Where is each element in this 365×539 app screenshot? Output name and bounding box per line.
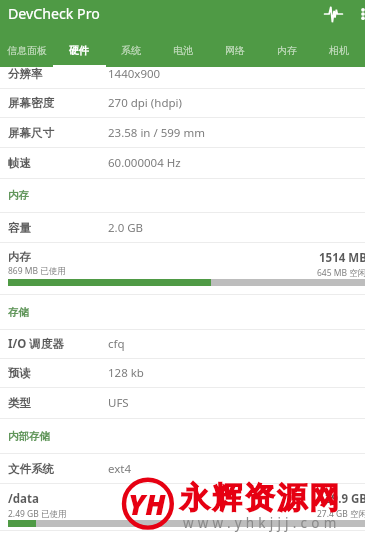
staticText: 29.9 GB [325, 491, 365, 507]
staticText: 60.000004 Hz [108, 155, 181, 171]
staticText: 存储 [8, 306, 29, 319]
button[interactable]: I/O 调度器 [0, 330, 365, 359]
staticText: 1440x900 [108, 67, 161, 82]
button[interactable]: 内存 [0, 243, 365, 295]
staticText: 869 MB 已使用 [8, 265, 66, 277]
staticText: 内存 [8, 250, 31, 264]
staticText: YH [128, 485, 166, 524]
button[interactable]: 网络 [209, 34, 261, 67]
button[interactable]: More options [352, 3, 365, 25]
staticText: UFS [108, 395, 129, 411]
staticText: 2.49 GB 已使用 [8, 508, 67, 520]
button[interactable]: 容量 [0, 213, 365, 243]
staticText: 永辉资源网 [179, 479, 340, 517]
button[interactable]: 预读 [0, 359, 365, 388]
button[interactable]: /data [0, 484, 365, 531]
staticText: 网络 [225, 44, 245, 57]
staticText: 270 dpi (hdpi) [108, 95, 182, 111]
staticText: 系统 [121, 44, 141, 57]
staticText: 分辨率 [8, 67, 108, 81]
staticText: 内部存储 [8, 430, 50, 443]
staticText: 相机 [329, 44, 349, 57]
staticText: 屏幕尺寸 [8, 126, 108, 140]
staticText: 23.58 in / 599 mm [108, 125, 205, 141]
button[interactable]: 硬件 [53, 34, 105, 67]
staticText: DevCheck Pro [8, 4, 100, 23]
staticText: 1514 MB [319, 250, 365, 266]
staticText: /data [8, 491, 39, 507]
staticText: 容量 [8, 221, 108, 235]
button[interactable]: Live monitor [322, 3, 344, 25]
button[interactable]: 分辨率 [0, 67, 365, 89]
button[interactable]: 内存 [261, 34, 313, 67]
staticText: 内存 [277, 44, 297, 57]
button[interactable]: 系统 [105, 34, 157, 67]
staticText: 128 kb [108, 365, 144, 381]
staticText: 645 MB 空闲 [317, 267, 365, 279]
staticText: cfq [108, 336, 125, 352]
staticText: 预读 [8, 366, 108, 380]
button[interactable]: 相机 [313, 34, 365, 67]
staticText: 电池 [173, 44, 193, 57]
staticText: 信息面板 [7, 44, 47, 57]
button[interactable]: 类型 [0, 388, 365, 419]
staticText: 硬件 [69, 44, 89, 57]
button[interactable]: 信息面板 [0, 34, 53, 67]
staticText: 文件系统 [8, 462, 108, 476]
button[interactable]: 帧速 [0, 148, 365, 179]
staticText: 类型 [8, 396, 108, 410]
staticText: 2.0 GB [108, 220, 144, 236]
button[interactable]: 电池 [157, 34, 209, 67]
staticText: 内存 [8, 189, 29, 202]
staticText: 屏幕密度 [8, 96, 108, 110]
staticText: 27.4 GB 空闲 [317, 508, 365, 520]
staticText: www.yhkjjj.com [183, 514, 341, 532]
button[interactable]: 屏幕尺寸 [0, 118, 365, 148]
staticText: I/O 调度器 [8, 336, 108, 352]
staticText: 帧速 [8, 156, 108, 170]
button[interactable]: 文件系统 [0, 454, 365, 484]
staticText: ext4 [108, 461, 132, 477]
button[interactable]: 屏幕密度 [0, 89, 365, 118]
